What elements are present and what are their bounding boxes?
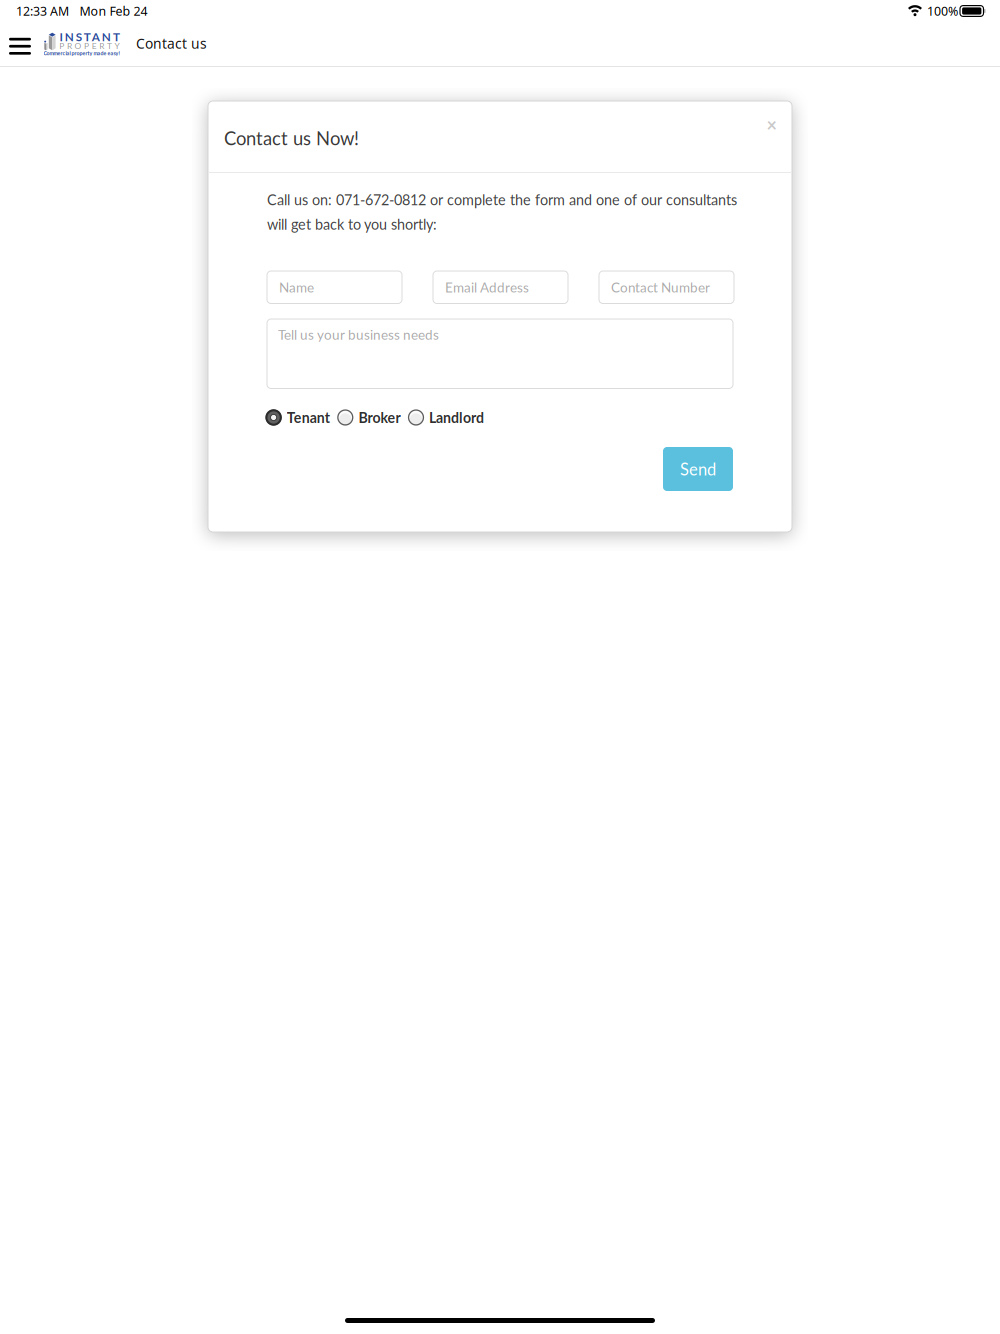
staticText: Call us on: 071-672-0812 or complete the… xyxy=(267,191,737,208)
staticText: Broker xyxy=(358,409,400,426)
staticText: Name xyxy=(279,279,314,295)
button[interactable]: Tenant xyxy=(265,409,330,426)
button[interactable]: Instant Property home xyxy=(43,30,123,58)
button[interactable]: Send xyxy=(663,447,733,491)
staticText: will get back to you shortly: xyxy=(267,215,437,233)
button[interactable]: Open menu xyxy=(0,25,40,67)
staticText: Contact Number xyxy=(611,279,710,295)
staticText: INSTANT xyxy=(60,30,120,44)
staticText: Contact us Now! xyxy=(224,127,359,149)
staticText: × xyxy=(766,114,776,136)
button[interactable]: Email Address xyxy=(433,271,568,303)
staticText: Mon Feb 24 xyxy=(79,3,147,19)
button[interactable]: Landlord xyxy=(408,409,484,426)
staticText: Commercial property made easy! xyxy=(44,50,120,56)
staticText: 12:33 AM xyxy=(16,3,69,19)
button[interactable]: Tell us your business needs xyxy=(267,319,733,388)
button[interactable]: Contact Number xyxy=(599,271,734,303)
staticText: Send xyxy=(680,459,716,479)
staticText: Email Address xyxy=(445,279,529,295)
staticText: PROPERTY xyxy=(59,41,119,51)
staticText: Tenant xyxy=(287,409,330,426)
staticText: Tell us your business needs xyxy=(278,326,439,343)
staticText: 100% xyxy=(927,3,958,19)
staticText: Landlord xyxy=(429,409,484,426)
button[interactable]: Close xyxy=(759,113,783,137)
button[interactable]: Name xyxy=(267,271,402,303)
button[interactable]: Contact us xyxy=(134,23,209,64)
staticText: Contact us xyxy=(136,34,207,53)
button[interactable]: Broker xyxy=(337,409,400,426)
